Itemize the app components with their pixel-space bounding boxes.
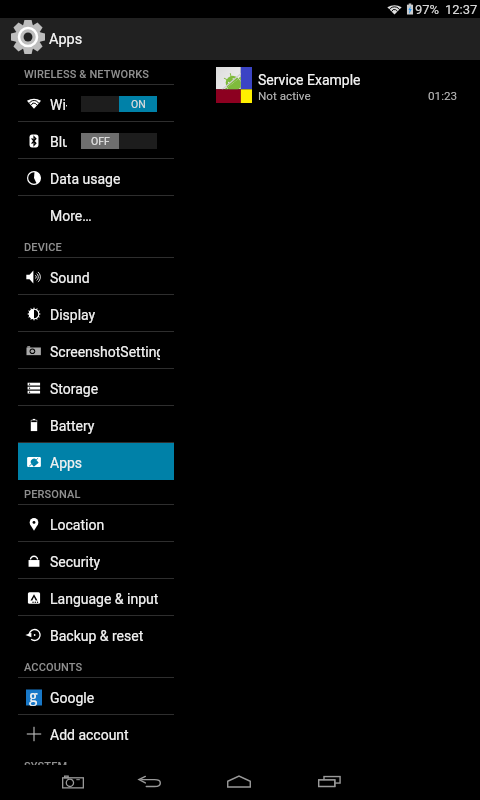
button[interactable]: Screenshot <box>52 765 94 800</box>
button[interactable]: ON <box>81 96 157 112</box>
button[interactable]: More… <box>18 196 174 233</box>
staticText: Apps <box>50 455 83 471</box>
staticText: 97% <box>415 2 440 17</box>
button[interactable]: Sound <box>18 258 174 295</box>
button[interactable]: Storage <box>18 369 174 406</box>
staticText: Wi-Fi <box>50 97 67 113</box>
staticText: Not active <box>258 89 311 103</box>
button[interactable]: Data usage <box>18 159 174 196</box>
staticText: More… <box>50 208 92 224</box>
staticText: Backup & reset <box>50 628 144 644</box>
button[interactable]: Battery <box>18 406 174 443</box>
staticText: Security <box>50 554 101 570</box>
staticText: ON <box>131 98 146 110</box>
staticText: Language & input <box>50 591 159 607</box>
button[interactable]: Language & input <box>18 579 174 616</box>
staticText: Storage <box>50 381 99 397</box>
button[interactable]: Recents <box>308 765 351 800</box>
staticText: Service Example <box>258 72 361 88</box>
staticText: g <box>29 685 38 707</box>
staticText: SYSTEM <box>24 760 68 773</box>
staticText: 01:23 <box>428 89 458 103</box>
button[interactable]: Backup & reset <box>18 616 174 653</box>
button[interactable]: OFF <box>81 133 157 149</box>
staticText: DEVICE <box>24 241 62 254</box>
staticText: Display <box>50 307 96 323</box>
staticText: Sound <box>50 270 90 286</box>
staticText: OFF <box>91 135 110 147</box>
button[interactable]: Home <box>217 765 261 800</box>
button[interactable]: Back <box>128 765 171 800</box>
staticText: PERSONAL <box>24 488 81 501</box>
staticText: ScreenshotSettings <box>50 344 160 360</box>
button[interactable]: g <box>18 678 174 715</box>
button[interactable]: Bluetooth <box>18 122 174 159</box>
button[interactable]: Wi-Fi <box>18 85 174 122</box>
button[interactable]: Service Example <box>174 62 480 106</box>
staticText: 12:37 <box>445 2 478 17</box>
staticText: Bluetooth <box>50 134 67 150</box>
staticText: Data usage <box>50 171 121 187</box>
button[interactable]: Add account <box>18 715 174 752</box>
button[interactable]: Display <box>18 295 174 332</box>
staticText: Add account <box>50 727 129 743</box>
staticText: Google <box>50 690 95 706</box>
button[interactable]: Apps <box>0 18 480 60</box>
button[interactable]: Location <box>18 505 174 542</box>
staticText: Apps <box>49 31 83 48</box>
staticText: WIRELESS & NETWORKS <box>24 68 150 81</box>
staticText: Battery <box>50 418 95 434</box>
button[interactable]: Apps <box>18 443 174 480</box>
staticText: Location <box>50 517 105 533</box>
button[interactable]: ScreenshotSettings <box>18 332 174 369</box>
button[interactable]: Security <box>18 542 174 579</box>
staticText: ACCOUNTS <box>24 661 83 674</box>
